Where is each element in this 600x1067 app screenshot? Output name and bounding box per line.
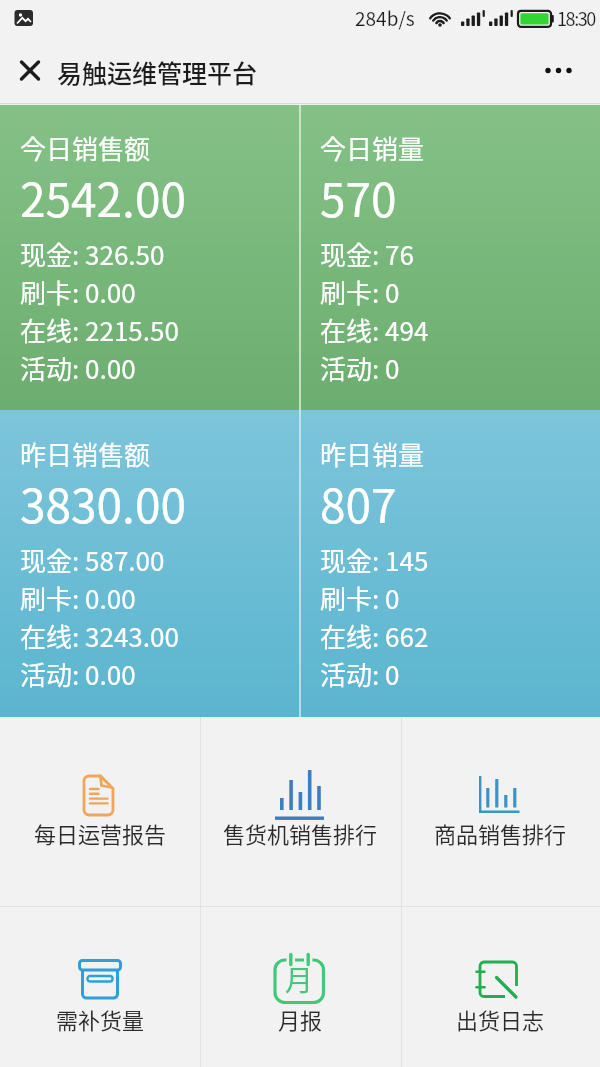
staticText: 2542.00	[20, 164, 186, 231]
staticText: 570	[320, 164, 397, 231]
staticText: 商品销售排行	[434, 817, 567, 849]
staticText: 出货日志	[456, 1003, 545, 1035]
button[interactable]	[402, 907, 600, 1067]
button[interactable]	[0, 907, 200, 1067]
button[interactable]	[201, 717, 401, 906]
staticText: 月	[285, 959, 314, 1000]
staticText: 3830.00	[20, 470, 186, 537]
staticText: 易触运维管理平台	[57, 54, 258, 90]
staticText: 今日销售额	[20, 129, 151, 167]
button[interactable]	[536, 52, 580, 90]
staticText: 昨日销售额	[20, 435, 151, 473]
button[interactable]	[12, 52, 50, 90]
staticText: 需补货量	[56, 1003, 145, 1035]
staticText: 售货机销售排行	[223, 817, 378, 849]
staticText: 每日运营报告	[34, 817, 167, 849]
staticText: 284b/s	[355, 4, 415, 32]
button[interactable]	[0, 717, 200, 906]
staticText: 现金: 145 刷卡: 0 在线: 662 活动: 0	[320, 541, 429, 693]
staticText: 807	[320, 470, 397, 537]
staticText: 18:30	[557, 5, 595, 31]
button[interactable]	[201, 907, 401, 1067]
staticText: 现金: 326.50 刷卡: 0.00 在线: 2215.50 活动: 0.00	[20, 235, 179, 387]
staticText: 现金: 587.00 刷卡: 0.00 在线: 3243.00 活动: 0.00	[20, 541, 179, 693]
button[interactable]	[402, 717, 600, 906]
staticText: 今日销量	[320, 129, 425, 167]
staticText: 月报	[278, 1003, 323, 1035]
staticText: 现金: 76 刷卡: 0 在线: 494 活动: 0	[320, 235, 429, 387]
staticText: 昨日销量	[320, 435, 425, 473]
